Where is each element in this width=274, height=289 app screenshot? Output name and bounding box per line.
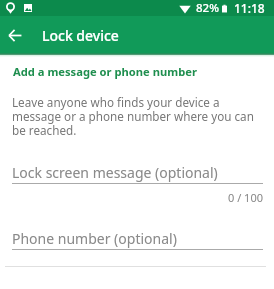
staticText: 11:18 xyxy=(234,0,265,16)
staticText: Phone number (optional) xyxy=(12,229,177,248)
staticText: 0 / 100 xyxy=(12,190,263,205)
staticText: Lock screen message (optional) xyxy=(12,163,218,182)
staticText: Leave anyone who finds your device a mes… xyxy=(12,94,260,139)
staticText: Lock device xyxy=(42,26,119,45)
staticText: Add a message or phone number xyxy=(13,64,197,79)
staticText: 82% xyxy=(196,0,219,16)
button[interactable]: Back xyxy=(0,20,30,50)
